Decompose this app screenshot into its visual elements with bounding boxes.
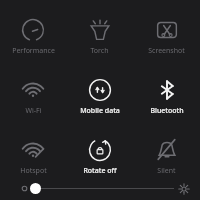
staticText: Hotspot — [20, 166, 47, 176]
button[interactable]: Torch — [66, 16, 133, 57]
button[interactable]: Bluetooth — [133, 76, 200, 117]
button[interactable]: Rotate off — [66, 136, 133, 177]
button[interactable]: Performance — [0, 16, 66, 57]
button[interactable]: Screenshot — [133, 16, 200, 57]
staticText: Screenshot — [148, 46, 185, 56]
button[interactable]: Silent — [133, 136, 200, 177]
staticText: Wi-Fi — [25, 106, 42, 116]
staticText: Torch — [90, 46, 109, 56]
button[interactable]: Wi-Fi — [0, 76, 66, 117]
staticText: Bluetooth — [150, 106, 184, 116]
staticText: Mobile data — [80, 106, 120, 116]
staticText: Performance — [12, 46, 55, 56]
staticText: Rotate off — [83, 166, 117, 176]
button[interactable]: Brightness — [0, 177, 200, 200]
staticText: Silent — [157, 166, 176, 176]
button[interactable]: Hotspot — [0, 136, 66, 177]
button[interactable]: Mobile data — [66, 76, 133, 117]
